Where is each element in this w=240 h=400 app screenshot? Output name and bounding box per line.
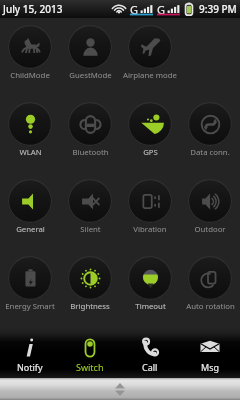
staticText: 9:39 PM [199, 2, 237, 16]
staticText: Energy Smart [5, 301, 55, 312]
staticText: Airplane mode [123, 70, 177, 81]
staticText: Brightness [70, 301, 110, 312]
staticText: G [157, 2, 166, 14]
button[interactable]: ChildMode [0, 24, 60, 96]
staticText: Data conn. [190, 147, 230, 158]
button[interactable]: Vibration [120, 178, 180, 250]
button[interactable]: Call [120, 328, 180, 378]
staticText: Bluetooth [72, 147, 109, 158]
button[interactable]: Timeout [120, 255, 180, 327]
staticText: Switch [76, 361, 104, 373]
staticText: July 15, 2013 [3, 2, 63, 16]
button[interactable]: Outdoor [180, 178, 240, 250]
button[interactable]: Msg [180, 328, 240, 378]
button[interactable]: Notify [0, 328, 60, 378]
staticText: WLAN [19, 147, 42, 158]
staticText: Timeout [135, 301, 166, 312]
staticText: Msg [201, 361, 220, 373]
button[interactable]: General [0, 178, 60, 250]
button[interactable]: Energy Smart [0, 255, 60, 327]
staticText: ChildMode [10, 70, 50, 81]
button[interactable]: WLAN [0, 101, 60, 173]
button[interactable]: Expand [0, 378, 240, 400]
staticText: GPS [143, 147, 158, 158]
staticText: Vibration [133, 224, 167, 235]
button[interactable]: GPS [120, 101, 180, 173]
button[interactable]: Silent [60, 178, 120, 250]
button[interactable]: Switch [60, 328, 120, 378]
staticText: GuestMode [69, 70, 112, 81]
staticText: Auto rotation [186, 301, 235, 312]
button[interactable]: Bluetooth [60, 101, 120, 173]
staticText: Call [142, 361, 158, 373]
button[interactable]: GuestMode [60, 24, 120, 96]
button[interactable]: Brightness [60, 255, 120, 327]
staticText: G [130, 2, 139, 14]
staticText: Silent [80, 224, 101, 235]
button[interactable]: Data conn. [180, 101, 240, 173]
staticText: Notify [17, 361, 43, 373]
button[interactable]: Airplane mode [120, 24, 180, 96]
staticText: General [16, 224, 45, 235]
button[interactable]: Auto rotation [180, 255, 240, 327]
staticText: Outdoor [194, 224, 226, 235]
